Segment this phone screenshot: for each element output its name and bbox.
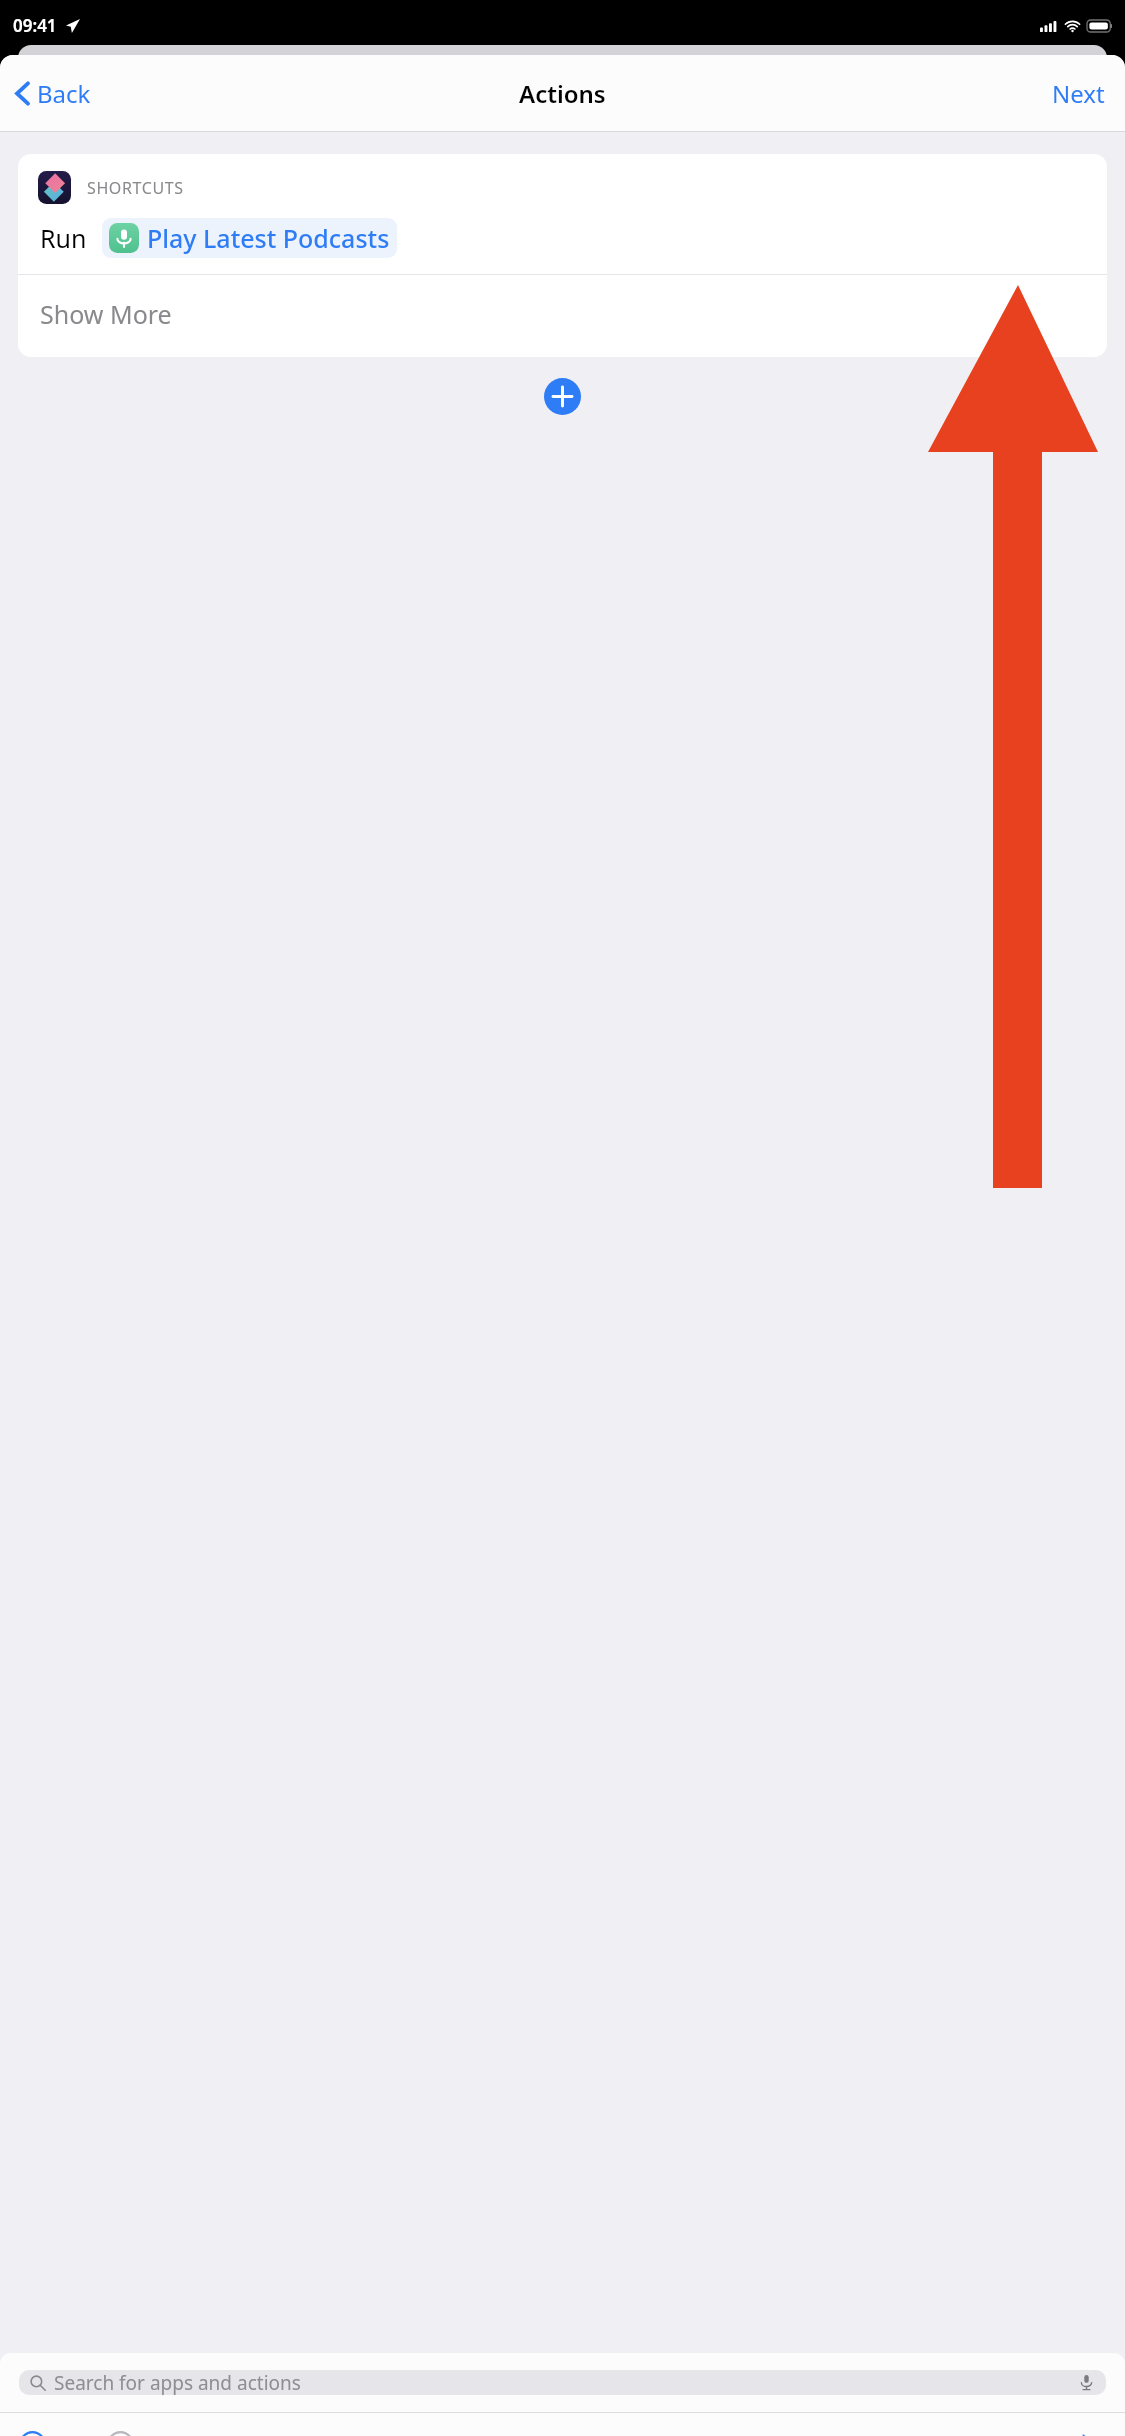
button[interactable]: SHORTCUTS <box>18 154 1107 274</box>
button[interactable]: Search for apps and actions <box>19 2370 1106 2395</box>
button[interactable]: Undo <box>12 2425 53 2436</box>
staticText: SHORTCUTS <box>87 177 184 199</box>
staticText: Search for apps and actions <box>54 2370 301 2395</box>
staticText: Play Latest Podcasts <box>147 221 390 255</box>
staticText: 09:41 <box>13 14 57 37</box>
staticText: Run <box>40 221 87 255</box>
button[interactable]: Run shortcut <box>1075 2428 1108 2436</box>
staticText: Back <box>37 77 91 110</box>
button[interactable]: Add action <box>544 378 581 415</box>
button[interactable]: Show More <box>18 275 1107 357</box>
button[interactable]: Redo <box>100 2425 141 2436</box>
button[interactable]: Next <box>1044 71 1113 116</box>
other: Voice search <box>1078 2374 1095 2391</box>
staticText: Actions <box>519 77 606 110</box>
staticText: Show More <box>40 297 172 331</box>
staticText: Next <box>1052 77 1105 110</box>
button[interactable]: Back <box>10 71 97 116</box>
